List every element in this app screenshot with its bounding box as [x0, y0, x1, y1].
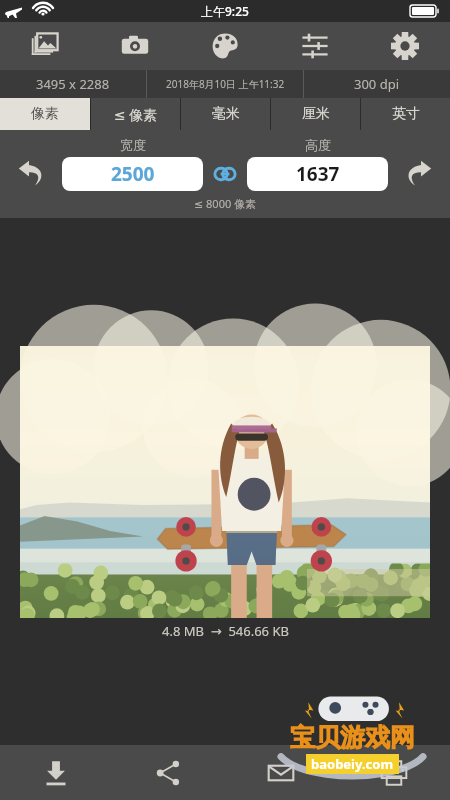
- staticText: 英寸: [392, 105, 420, 123]
- staticText: 高度: [305, 137, 331, 153]
- staticText: 2018年8月10日 上午11:32: [166, 77, 285, 91]
- staticText: 4.8 MB → 546.66 KB: [162, 622, 289, 640]
- button[interactable]: ≤ 像素: [91, 98, 180, 130]
- button[interactable]: Photos: [0, 22, 90, 70]
- button[interactable]: 毫米: [181, 98, 270, 130]
- button[interactable]: Settings: [360, 22, 450, 70]
- staticText: ≤ 8000 像素: [194, 196, 257, 211]
- button[interactable]: 2500: [62, 157, 203, 191]
- staticText: 2500: [111, 161, 155, 187]
- button[interactable]: Download: [0, 745, 112, 800]
- staticText: 300 dpi: [354, 75, 400, 93]
- button[interactable]: Redo: [394, 150, 442, 198]
- staticText: 1637: [296, 161, 340, 187]
- staticText: 宝贝游戏网: [290, 722, 415, 753]
- button[interactable]: Undo: [8, 150, 56, 198]
- button[interactable]: Link aspect ratio: [203, 157, 247, 191]
- staticText: 厘米: [302, 105, 330, 123]
- staticText: ≤ 像素: [114, 105, 158, 124]
- button[interactable]: Adjust: [270, 22, 360, 70]
- button[interactable]: 英寸: [361, 98, 450, 130]
- staticText: baobeiy.com: [311, 755, 394, 773]
- button[interactable]: Print: [337, 745, 450, 800]
- button[interactable]: Share: [112, 745, 224, 800]
- button[interactable]: Email: [224, 745, 337, 800]
- button[interactable]: 厘米: [271, 98, 360, 130]
- button[interactable]: 像素: [0, 98, 90, 130]
- staticText: 毫米: [212, 105, 240, 123]
- staticText: 上午9:25: [201, 3, 249, 19]
- staticText: 3495 x 2288: [36, 75, 110, 93]
- staticText: 宽度: [120, 137, 146, 153]
- button[interactable]: [20, 346, 430, 618]
- button[interactable]: 1637: [247, 157, 388, 191]
- staticText: 像素: [31, 105, 59, 123]
- button[interactable]: Palette: [180, 22, 270, 70]
- button[interactable]: Camera: [90, 22, 180, 70]
